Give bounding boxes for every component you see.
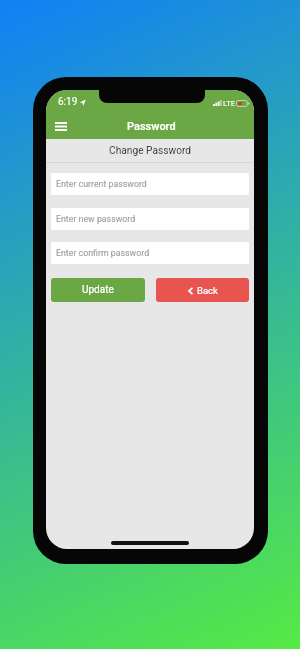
staticText: Enter confirm password bbox=[56, 248, 150, 258]
staticText: Change Password bbox=[109, 145, 192, 157]
button[interactable]: Back bbox=[156, 278, 249, 302]
staticText: Back bbox=[197, 285, 218, 296]
staticText: Update bbox=[82, 284, 114, 296]
staticText: 6:19 bbox=[58, 96, 78, 108]
staticText: Password bbox=[127, 120, 176, 133]
staticText: LTE bbox=[223, 99, 236, 107]
staticText: Enter new password bbox=[56, 214, 136, 224]
button[interactable]: Update bbox=[51, 278, 145, 302]
button[interactable]: Open navigation menu bbox=[49, 114, 73, 138]
staticText: Enter current password bbox=[56, 179, 147, 189]
